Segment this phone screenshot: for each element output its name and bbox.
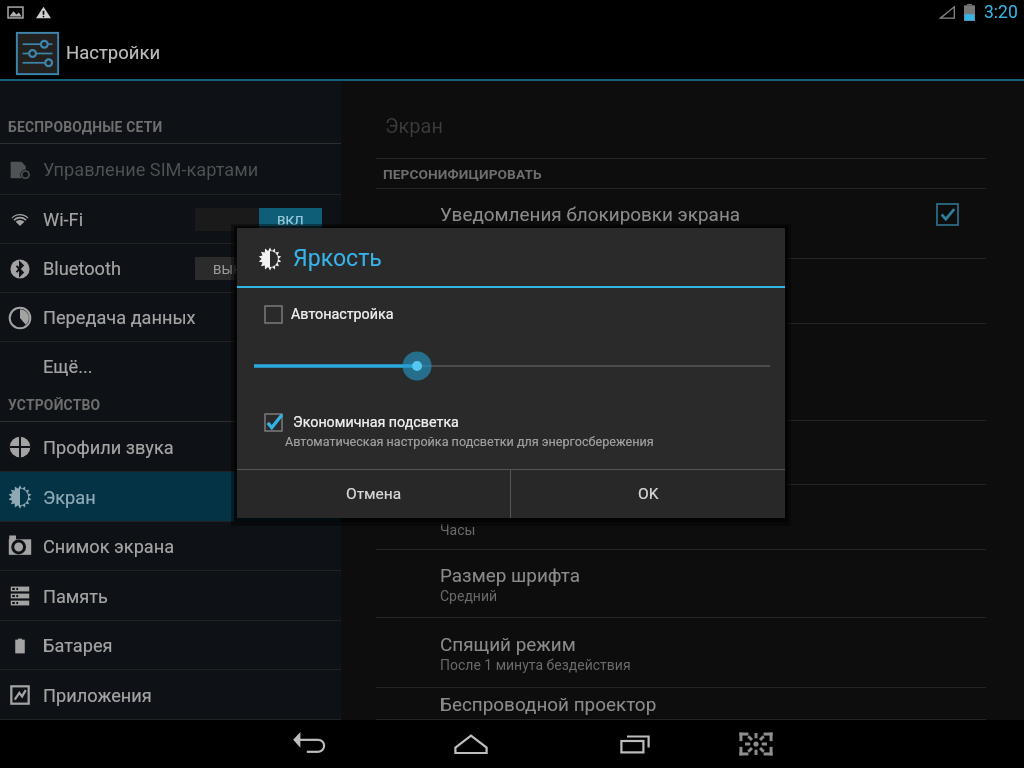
staticText: Часы: [440, 522, 476, 538]
staticText: Передача данных: [43, 307, 196, 328]
button[interactable]: Размер шрифта: [341, 550, 1024, 618]
button[interactable]: Recents: [595, 720, 675, 768]
button[interactable]: Память: [0, 571, 341, 621]
staticText: Снимок экрана: [43, 536, 175, 557]
staticText: Экран: [43, 487, 96, 508]
staticText: Средний: [440, 588, 498, 604]
staticText: Настройки: [66, 42, 161, 64]
staticText: Экран: [385, 114, 443, 137]
button[interactable]: Ещё...: [0, 342, 341, 391]
button[interactable]: Bluetooth: [0, 244, 341, 293]
button[interactable]: Управление SIM-картами: [0, 144, 341, 195]
staticText: ВКЛ: [277, 212, 304, 228]
button[interactable]: Беспроводной проектор: [341, 688, 1024, 720]
staticText: БЕСПРОВОДНЫЕ СЕТИ: [8, 119, 163, 135]
button[interactable]: ВЫК: [195, 257, 259, 280]
button[interactable]: Заставка: [341, 485, 1024, 550]
button[interactable]: Передача данных: [0, 293, 341, 342]
staticText: Приложения: [43, 685, 152, 706]
staticText: После 1 минута бездействия: [440, 657, 631, 673]
staticText: Спящий режим: [440, 442, 576, 464]
staticText: Профили звука: [43, 437, 174, 458]
staticText: Wi-Fi: [43, 209, 84, 230]
staticText: Ещё...: [43, 356, 93, 377]
staticText: Память: [43, 586, 108, 607]
staticText: 3:20: [984, 2, 1018, 23]
button[interactable]: [195, 208, 259, 231]
staticText: ПЕРСОНИФИЦИРОВАТЬ: [383, 166, 542, 182]
staticText: Беспроводной проектор: [440, 693, 657, 715]
button[interactable]: OK: [511, 470, 785, 518]
button[interactable]: Снимок экрана: [0, 522, 341, 571]
button[interactable]: Отмена: [237, 470, 510, 518]
staticText: Спящий режим: [440, 633, 576, 655]
button[interactable]: Settings: [16, 32, 59, 75]
staticText: Управление SIM-картами: [43, 159, 259, 180]
staticText: Яркость: [293, 245, 382, 272]
button[interactable]: Wi-Fi: [0, 195, 341, 244]
staticText: OK: [638, 485, 659, 503]
staticText: Экономичная подсветка: [293, 414, 459, 431]
button[interactable]: [259, 257, 322, 280]
staticText: Уведомления блокировки экрана: [440, 203, 741, 225]
button[interactable]: Автонастройка: [265, 306, 394, 323]
button[interactable]: Обои: [341, 259, 1024, 324]
staticText: УСТРОЙСТВО: [8, 397, 101, 413]
staticText: Bluetooth: [43, 258, 121, 279]
button[interactable]: Профили звука: [0, 422, 341, 472]
button[interactable]: ВКЛ: [259, 208, 322, 231]
staticText: Автоматическая настройка подсветки для э…: [285, 434, 654, 449]
button[interactable]: Home: [431, 720, 511, 768]
button[interactable]: Экран: [0, 472, 341, 522]
button[interactable]: Яркость: [341, 324, 1024, 421]
button[interactable]: Screenshot: [716, 720, 796, 768]
button[interactable]: Батарея: [0, 621, 341, 670]
button[interactable]: Приложения: [0, 670, 341, 720]
button[interactable]: Back: [269, 720, 349, 768]
staticText: Размер шрифта: [440, 564, 580, 586]
button[interactable]: Уведомления блокировки экрана: [341, 189, 1024, 259]
button[interactable]: Экономичная подсветка: [265, 414, 459, 431]
staticText: Отмена: [346, 485, 402, 503]
button[interactable]: Спящий режим: [341, 421, 1024, 485]
staticText: Заставка: [440, 498, 522, 520]
staticText: Яркость: [440, 362, 513, 384]
staticText: Обои: [440, 281, 486, 303]
staticText: Батарея: [43, 635, 113, 656]
button[interactable]: Спящий режим: [341, 618, 1024, 688]
staticText: ВЫК: [213, 261, 242, 277]
staticText: Автонастройка: [291, 306, 394, 323]
